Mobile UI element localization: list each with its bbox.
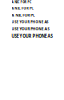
- staticText: USE YOUR PHONE AS: [11, 20, 48, 24]
- staticText: USE YOUR PHONE AS: [11, 26, 49, 31]
- staticText: USE YOUR PHONE AS: [11, 33, 52, 39]
- staticText: A NIC FOR PC: [11, 12, 34, 18]
- staticText: A NIC FOR PC: [11, 6, 33, 10]
- staticText: A NIC FOR PC: [11, 0, 31, 4]
